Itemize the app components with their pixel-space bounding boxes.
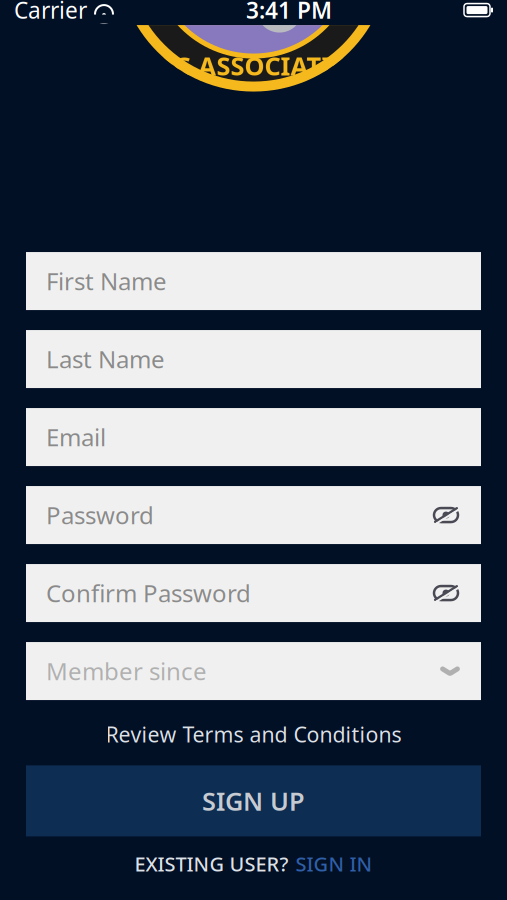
staticText: Email <box>46 421 106 453</box>
button[interactable]: Email <box>26 408 481 466</box>
staticText: DOG ASSOCIATION <box>134 49 372 82</box>
staticText: Last Name <box>46 343 165 375</box>
button[interactable]: Last Name <box>26 330 481 388</box>
button[interactable]: SIGN UP <box>26 765 481 836</box>
staticText: Member since <box>46 655 207 687</box>
staticText: 3:41 PM <box>246 0 332 25</box>
staticText: First Name <box>46 265 167 297</box>
staticText: SIGN UP <box>202 784 305 818</box>
staticText: Review Terms and Conditions <box>105 720 401 748</box>
button[interactable]: Confirm Password <box>26 564 481 622</box>
staticText: Password <box>46 499 154 531</box>
button[interactable]: Review Terms and Conditions <box>93 716 413 752</box>
button[interactable]: Password <box>26 486 481 544</box>
staticText: Carrier <box>14 0 87 25</box>
staticText: SIGN IN <box>295 850 372 877</box>
button[interactable]: First Name <box>26 252 481 310</box>
button[interactable]: Member since <box>26 642 481 700</box>
staticText: EXISTING USER? <box>134 850 288 877</box>
staticText: Confirm Password <box>46 577 251 609</box>
button[interactable]: EXISTING USER? <box>124 844 382 883</box>
